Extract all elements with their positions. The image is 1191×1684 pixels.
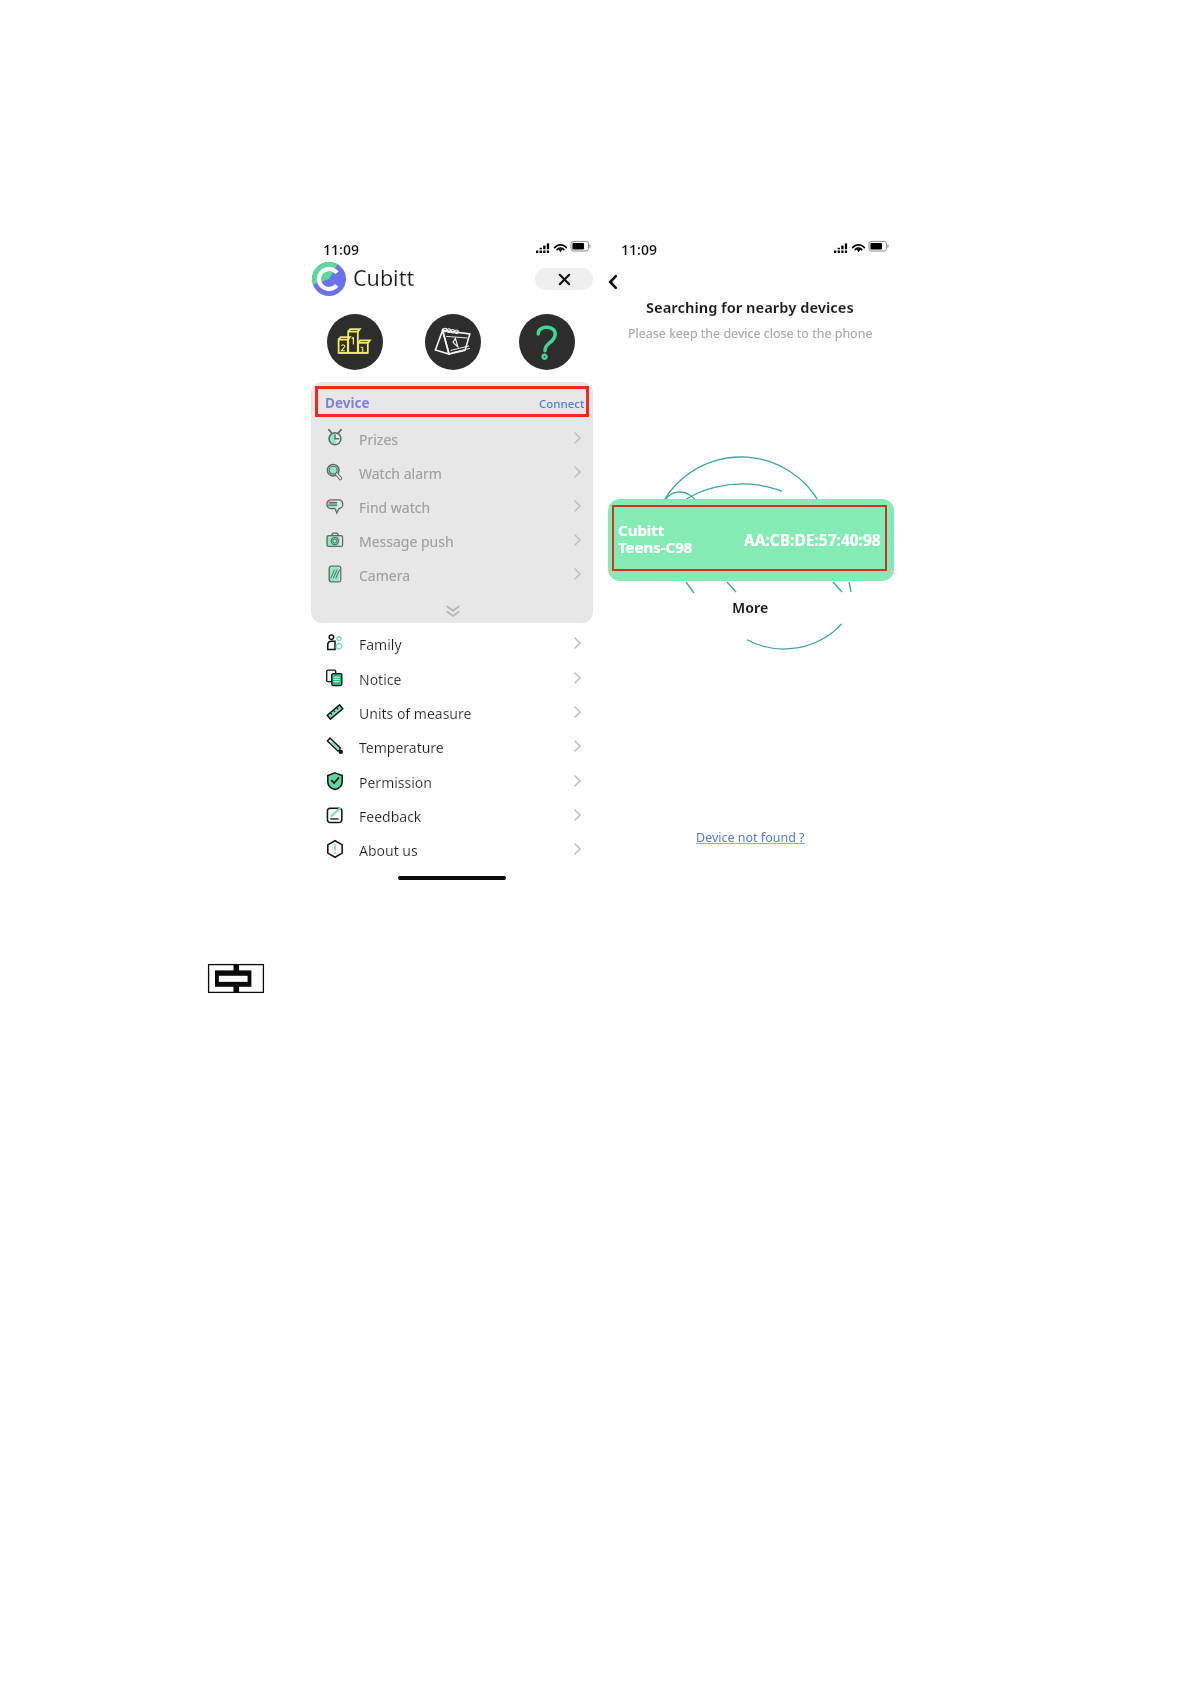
staticText: Feedback xyxy=(359,807,422,826)
button[interactable] xyxy=(311,832,593,866)
button[interactable]: More xyxy=(732,598,769,617)
staticText: Camera xyxy=(359,566,411,585)
staticText: 11:09 xyxy=(621,240,657,259)
button[interactable] xyxy=(311,695,593,729)
staticText: Device xyxy=(325,394,370,412)
staticText: Connect xyxy=(539,396,585,412)
staticText: Permission xyxy=(359,773,432,792)
button[interactable] xyxy=(311,764,593,798)
button[interactable]: Help xyxy=(519,314,575,370)
button[interactable]: Device not found ? xyxy=(696,829,805,846)
button[interactable] xyxy=(311,557,593,591)
button[interactable]: Expand xyxy=(444,604,462,618)
button[interactable]: Close xyxy=(535,268,593,290)
staticText: About us xyxy=(359,841,418,860)
button[interactable]: Device xyxy=(315,386,589,417)
button[interactable]: Ranking xyxy=(327,314,383,370)
staticText: Cubitt xyxy=(353,263,415,292)
button[interactable] xyxy=(311,661,593,695)
staticText: Prizes xyxy=(359,430,399,449)
staticText: Cubitt Teens-C98 xyxy=(618,520,693,557)
button[interactable] xyxy=(311,626,593,660)
button[interactable]: Back xyxy=(601,270,625,294)
button[interactable] xyxy=(311,523,593,557)
button[interactable] xyxy=(311,729,593,763)
staticText: Temperature xyxy=(359,738,444,757)
button[interactable] xyxy=(311,421,593,455)
button[interactable] xyxy=(311,455,593,489)
staticText: 11:09 xyxy=(323,240,359,259)
button[interactable]: Calendar xyxy=(425,314,481,370)
button[interactable]: Cubitt Teens-C98 xyxy=(608,499,894,581)
staticText: Please keep the device close to the phon… xyxy=(628,325,873,342)
staticText: Notice xyxy=(359,670,402,689)
button[interactable] xyxy=(311,798,593,832)
staticText: AA:CB:DE:57:40:98 xyxy=(744,529,881,550)
staticText: Find watch xyxy=(359,498,431,517)
staticText: Units of measure xyxy=(359,704,472,723)
staticText: Searching for nearby devices xyxy=(646,297,854,317)
button[interactable] xyxy=(311,489,593,523)
staticText: Family xyxy=(359,635,402,654)
staticText: Message push xyxy=(359,532,454,551)
staticText: Watch alarm xyxy=(359,464,442,483)
